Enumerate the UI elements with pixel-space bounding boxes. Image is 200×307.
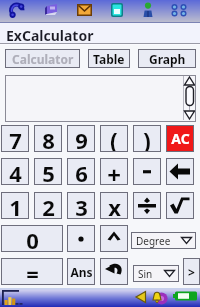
staticText: ExCalculator	[6, 26, 94, 45]
button[interactable]: Minus	[133, 158, 161, 185]
staticText: =	[26, 258, 39, 285]
button[interactable]: Apps	[170, 4, 188, 16]
staticText: 8	[42, 125, 55, 152]
button[interactable]: Notifications	[151, 290, 168, 306]
button[interactable]: 4	[1, 158, 29, 185]
staticText: 2	[42, 192, 55, 219]
button[interactable]: >	[183, 258, 200, 285]
button[interactable]: Messages	[77, 4, 92, 16]
staticText: Graph	[149, 51, 186, 67]
button[interactable]: Divide	[133, 192, 161, 219]
button[interactable]: 1	[1, 192, 29, 219]
staticText: >	[188, 264, 195, 280]
staticText: Calculator	[12, 51, 74, 67]
button[interactable]: Running programs	[1, 289, 26, 306]
staticText: (	[110, 125, 118, 152]
button[interactable]: Volume	[135, 290, 147, 304]
button[interactable]: Scroll	[183, 75, 195, 120]
button[interactable]: 9	[67, 125, 95, 152]
button[interactable]: 7	[1, 125, 29, 152]
staticText: Degree	[136, 234, 171, 248]
staticText: 1	[9, 192, 22, 219]
button[interactable]: +	[100, 158, 128, 185]
button[interactable]: Scroll	[5, 75, 196, 122]
button[interactable]: Power	[100, 225, 128, 252]
button[interactable]: Decimal point	[67, 225, 95, 252]
staticText: AC	[171, 129, 190, 148]
button[interactable]: Ans	[67, 258, 95, 285]
button[interactable]: Phone	[9, 3, 25, 19]
staticText: )	[143, 125, 151, 152]
staticText: 6	[75, 158, 88, 185]
staticText: +	[107, 158, 121, 185]
button[interactable]: 6	[67, 158, 95, 185]
button[interactable]: AC	[166, 125, 194, 152]
staticText: 7	[9, 125, 22, 152]
button[interactable]: Square root	[166, 192, 194, 219]
staticText: Ans	[70, 264, 93, 280]
button[interactable]: 0	[1, 225, 63, 252]
button[interactable]: Table	[88, 49, 130, 68]
button[interactable]: Battery	[173, 291, 198, 302]
staticText: x	[108, 192, 121, 219]
button[interactable]: 5	[34, 158, 62, 185]
button[interactable]: Sin	[133, 265, 179, 282]
button[interactable]: 8	[34, 125, 62, 152]
button[interactable]: Notes	[44, 3, 60, 17]
button[interactable]: Backspace	[166, 158, 194, 185]
button[interactable]: =	[1, 258, 63, 285]
button[interactable]: Calculator	[5, 49, 80, 68]
button[interactable]: 3	[67, 192, 95, 219]
staticText: 3	[75, 192, 88, 219]
button[interactable]: Graph	[138, 49, 196, 68]
staticText: Table	[93, 51, 125, 67]
button[interactable]: Contacts	[142, 2, 154, 18]
button[interactable]: x	[100, 192, 128, 219]
button[interactable]: Device	[111, 3, 123, 17]
button[interactable]: )	[133, 125, 161, 152]
button[interactable]: Undo	[100, 258, 128, 285]
staticText: 0	[26, 225, 39, 252]
button[interactable]: 2	[34, 192, 62, 219]
button[interactable]: Degree	[131, 232, 196, 249]
button[interactable]: (	[100, 125, 128, 152]
staticText: 9	[75, 125, 88, 152]
staticText: 4	[9, 158, 22, 185]
staticText: Sin	[138, 267, 153, 281]
staticText: 5	[42, 158, 55, 185]
